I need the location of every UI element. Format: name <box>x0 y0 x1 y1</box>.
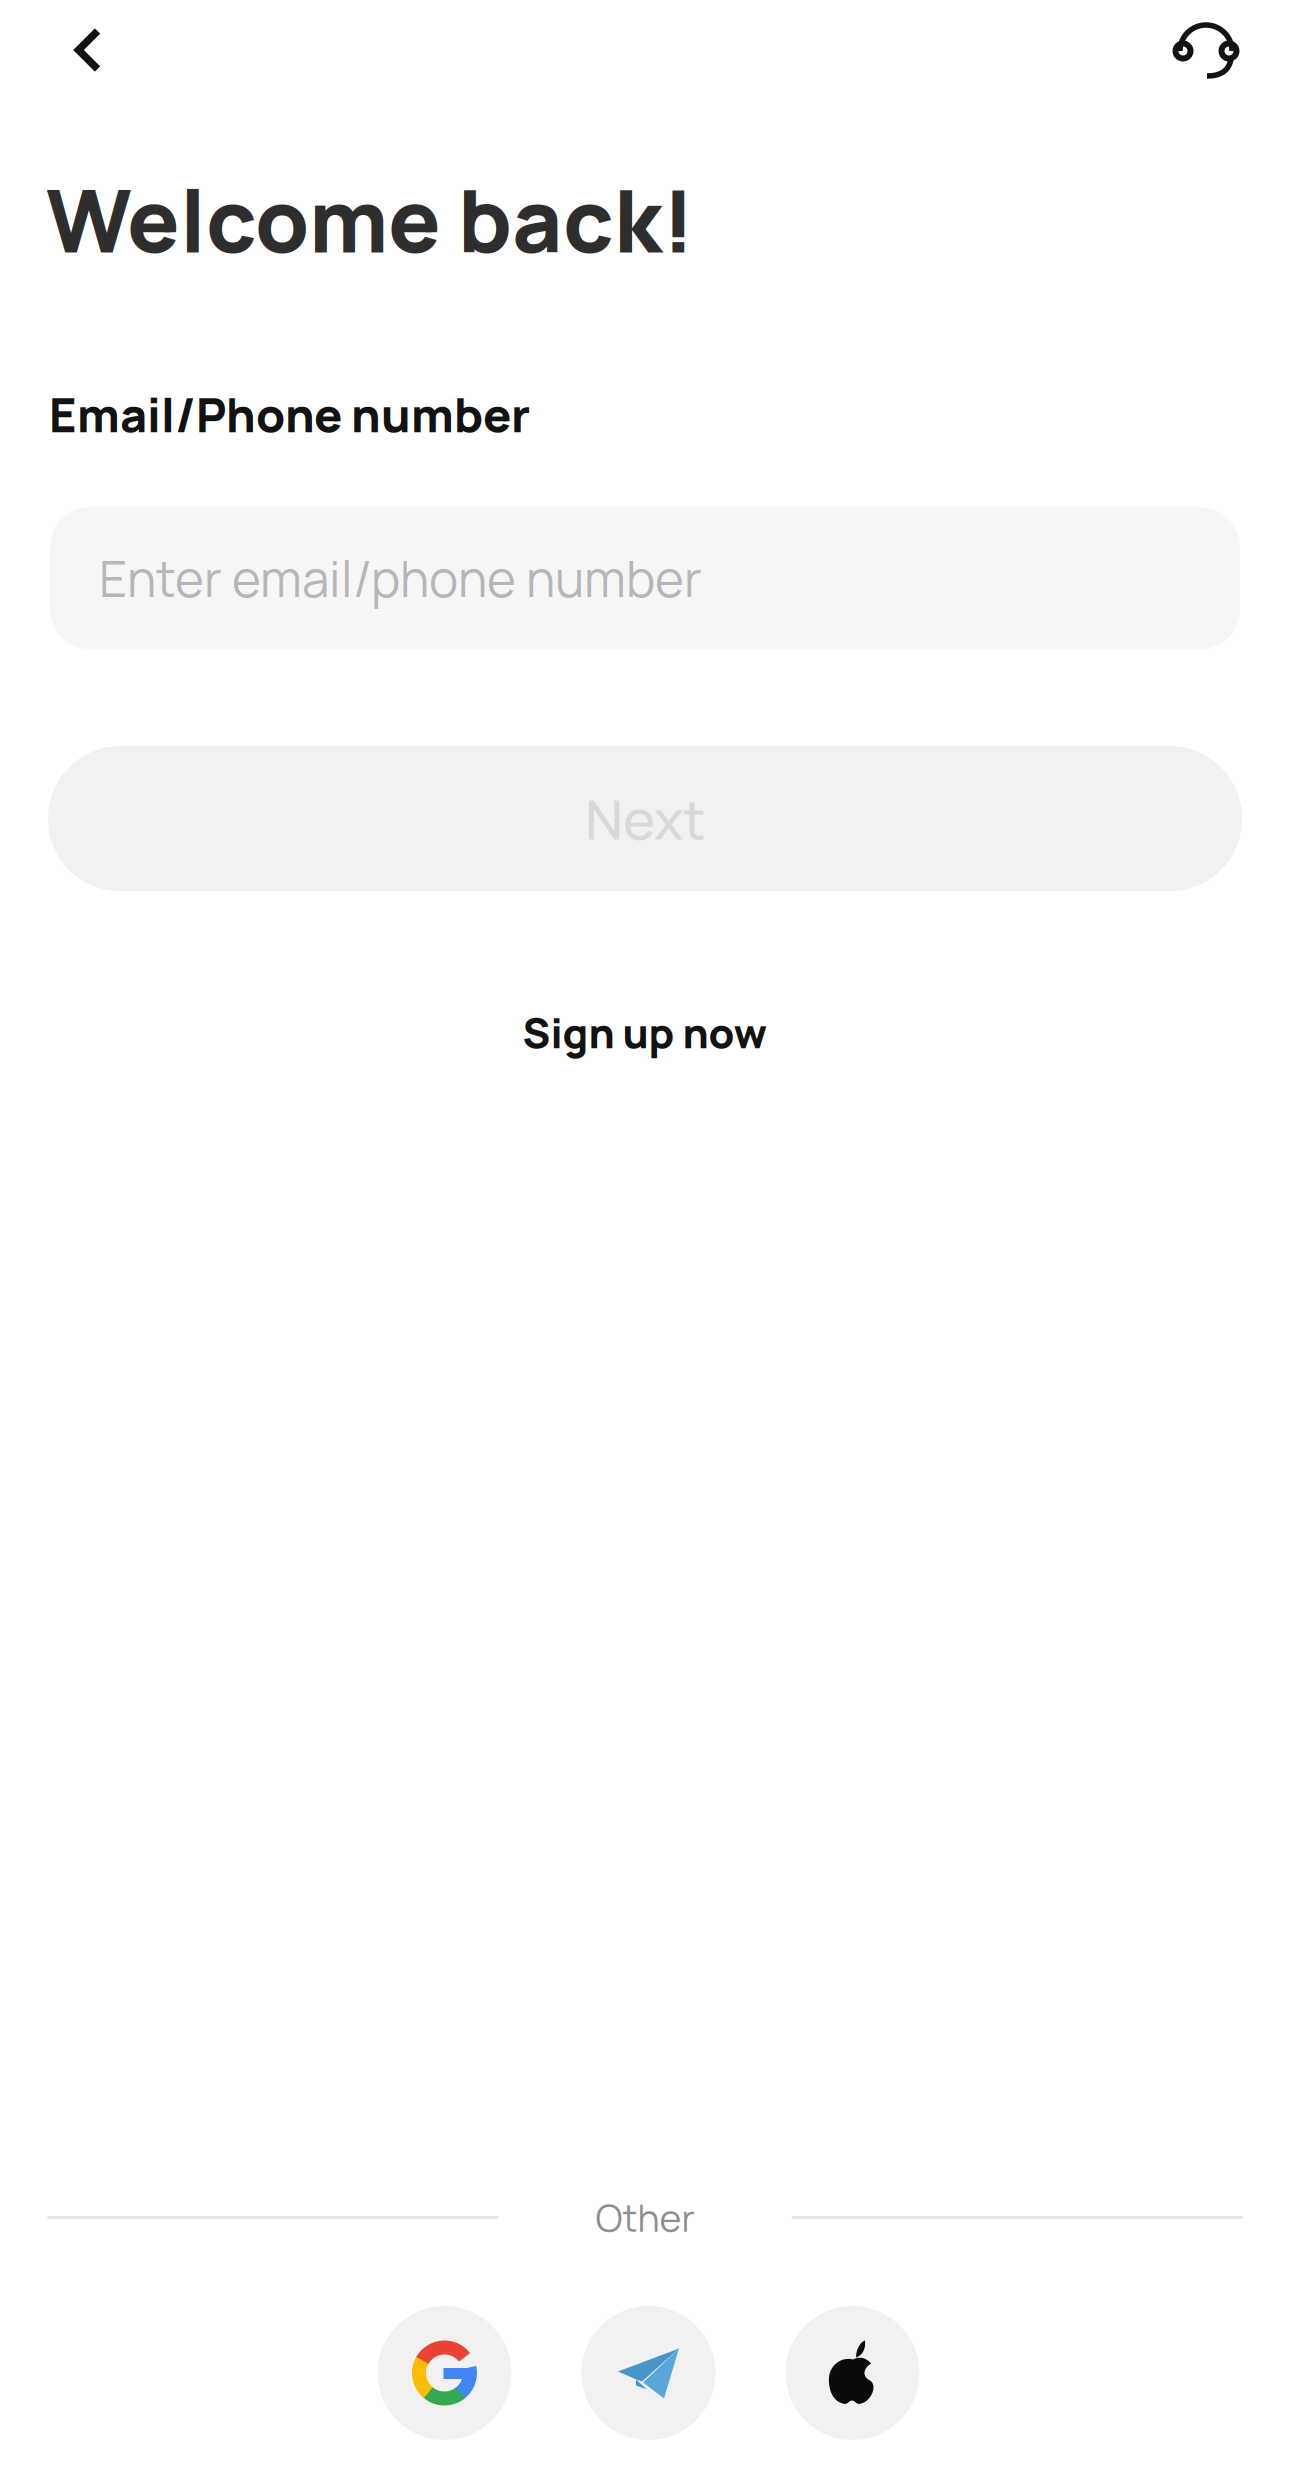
button[interactable]: Next <box>0 746 1290 891</box>
button[interactable]: Continue with Apple <box>785 2306 919 2440</box>
staticText: Welcome back! <box>46 160 695 278</box>
staticText: Next <box>585 781 705 856</box>
button[interactable]: Back <box>46 8 130 92</box>
button[interactable]: Continue with Google <box>377 2306 511 2440</box>
button[interactable]: Customer support <box>1164 8 1248 92</box>
staticText: Sign up now <box>522 1004 767 1061</box>
staticText: Other <box>595 2192 694 2243</box>
button[interactable]: Sign up now <box>486 984 803 1081</box>
staticText: Enter email/phone number <box>99 544 702 612</box>
staticText: Email/Phone number <box>49 382 530 446</box>
button[interactable]: Continue with Telegram <box>581 2306 715 2440</box>
